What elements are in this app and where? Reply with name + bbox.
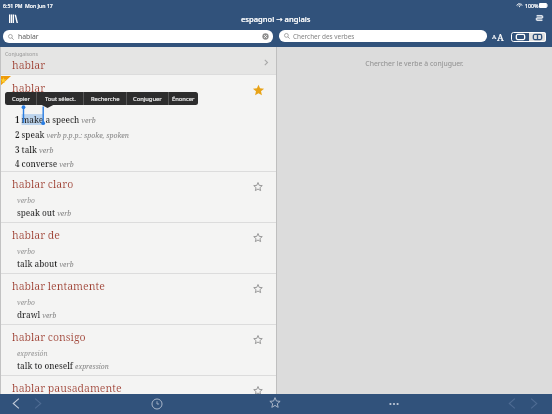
staticText: verbo xyxy=(17,298,35,307)
staticText: Chercher le verbe à conjuguer. xyxy=(365,59,464,68)
staticText: hablar xyxy=(12,58,46,72)
button[interactable]: Library xyxy=(9,14,18,23)
staticText: Mon Jun 17 xyxy=(25,2,53,9)
staticText: 1 make a speech verb xyxy=(15,114,96,125)
button[interactable]: Énoncer xyxy=(169,92,198,105)
staticText: Énoncer xyxy=(172,95,195,103)
staticText: 3 talk verb xyxy=(15,144,54,155)
staticText: hablar de xyxy=(12,228,60,242)
staticText: hablar pausadamente xyxy=(12,381,122,395)
button[interactable]: Chercher des verbes xyxy=(279,30,487,42)
button[interactable]: Text size xyxy=(492,31,506,41)
staticText: Conjuguer xyxy=(133,95,162,103)
button[interactable]: History xyxy=(151,398,163,410)
button[interactable]: Split pane xyxy=(529,32,546,42)
button[interactable]: Copier xyxy=(5,92,36,105)
staticText: A xyxy=(492,33,497,41)
staticText: 4 converse verb xyxy=(15,158,74,169)
button[interactable]: Add to favourites xyxy=(253,284,263,294)
button[interactable]: Forward xyxy=(31,397,44,410)
button[interactable]: Add to favourites xyxy=(253,335,263,345)
button[interactable]: Previous xyxy=(506,397,519,410)
button[interactable]: hablar consigo xyxy=(0,325,277,375)
staticText: 2 speak verb p.p.p.: spoke, spoken xyxy=(15,129,129,140)
button[interactable]: Tout sélect. xyxy=(37,92,83,105)
button[interactable]: hablar xyxy=(3,30,273,43)
staticText: verbo xyxy=(17,247,35,256)
staticText: 100% xyxy=(525,2,539,9)
button[interactable]: Recherche xyxy=(84,92,126,105)
staticText: verbo xyxy=(17,196,35,205)
button[interactable]: Back xyxy=(10,397,23,410)
staticText: Conjugaisons xyxy=(5,50,38,57)
button[interactable]: hablar de xyxy=(0,223,277,273)
button[interactable]: hablar claro xyxy=(0,172,277,222)
staticText: talk about verb xyxy=(17,258,74,269)
button[interactable]: Add to favourites xyxy=(253,182,263,192)
button[interactable]: More xyxy=(387,397,401,411)
staticText: espagnol → anglais xyxy=(241,14,311,24)
staticText: expresión xyxy=(17,349,48,358)
staticText: Recherche xyxy=(91,95,120,103)
staticText: hablar consigo xyxy=(12,330,86,344)
button[interactable]: Conjugaisons xyxy=(0,47,277,74)
button[interactable]: hablar lentamente xyxy=(0,274,277,324)
staticText: hablar lentamente xyxy=(12,279,105,293)
button[interactable]: Single pane xyxy=(511,32,529,42)
button[interactable]: Next xyxy=(527,397,540,410)
staticText: Copier xyxy=(12,95,30,103)
staticText: speak out verb xyxy=(17,207,72,218)
staticText: talk to oneself expression xyxy=(17,360,109,371)
button[interactable]: Conjuguer xyxy=(127,92,168,105)
staticText: Tout sélect. xyxy=(45,95,76,103)
button[interactable]: Add to favourites xyxy=(253,386,263,396)
staticText: 6:51 PM xyxy=(3,2,23,9)
button[interactable]: Add to favourites xyxy=(253,233,263,243)
staticText: hablar claro xyxy=(12,177,74,191)
staticText: A xyxy=(497,31,504,41)
staticText: drawl verb xyxy=(17,309,57,320)
staticText: Chercher des verbes xyxy=(293,32,355,41)
button[interactable]: hablar pausadamente xyxy=(0,376,277,394)
staticText: hablar xyxy=(12,81,46,95)
button[interactable]: Favourites xyxy=(269,397,281,409)
button[interactable]: Swap languages xyxy=(536,14,543,22)
staticText: hablar xyxy=(18,32,39,41)
